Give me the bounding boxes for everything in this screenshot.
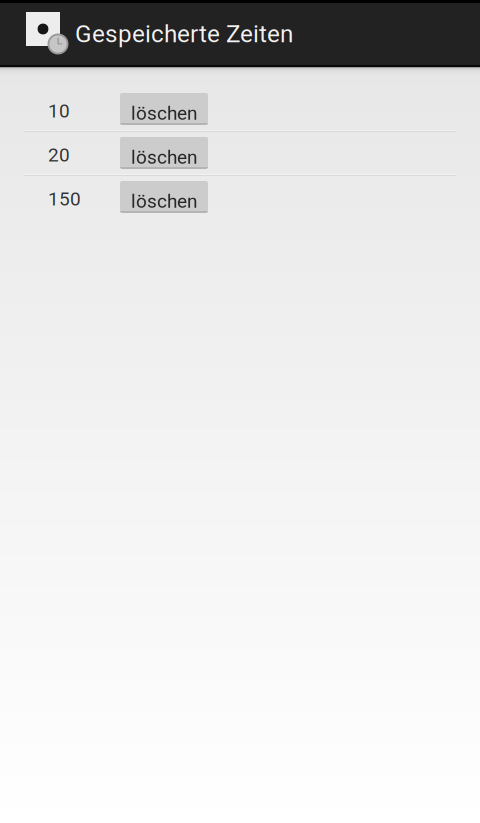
staticText: löschen xyxy=(131,190,197,212)
button[interactable]: löschen xyxy=(120,93,208,125)
staticText: 20 xyxy=(48,144,70,166)
staticText: löschen xyxy=(131,146,197,168)
staticText: Gespeicherte Zeiten xyxy=(75,20,293,48)
button[interactable]: löschen xyxy=(120,137,208,169)
staticText: 150 xyxy=(48,188,81,210)
staticText: 10 xyxy=(48,100,70,122)
staticText: löschen xyxy=(131,102,197,124)
button[interactable]: löschen xyxy=(120,181,208,213)
